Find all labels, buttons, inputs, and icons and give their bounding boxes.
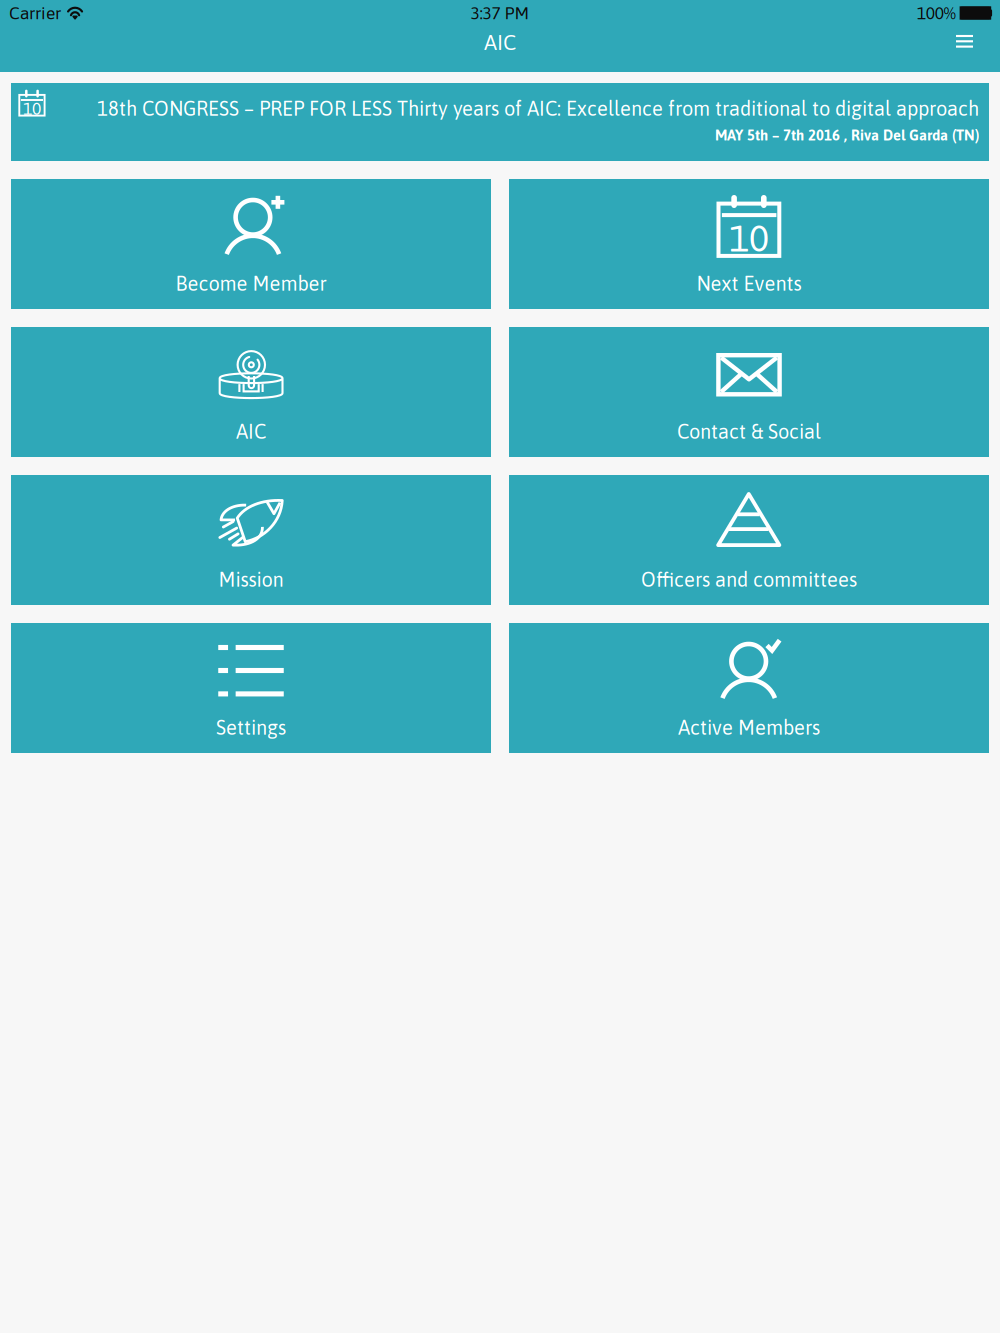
button[interactable]: Become Member [11, 179, 491, 309]
staticText: Next Events [696, 272, 801, 295]
button[interactable]: Active Members [509, 623, 989, 753]
staticText: Officers and committees [641, 568, 857, 591]
staticText: Settings [216, 716, 286, 739]
staticText: 10 [23, 99, 41, 119]
button[interactable]: Contact & Social [509, 327, 989, 457]
button[interactable]: 10 [11, 83, 989, 161]
staticText: Become Member [175, 272, 326, 295]
staticText: Carrier [9, 3, 61, 23]
button[interactable]: Mission [11, 475, 491, 605]
staticText: AIC [484, 30, 516, 54]
staticText: AIC [236, 420, 266, 443]
button[interactable]: Officers and committees [509, 475, 989, 605]
staticText: Active Members [678, 716, 820, 739]
staticText: 18th CONGRESS – PREP FOR LESS Thirty yea… [97, 97, 979, 120]
staticText: Mission [218, 568, 283, 591]
button[interactable]: Settings [11, 623, 491, 753]
staticText: 10 [729, 217, 769, 259]
staticText: 100% [917, 3, 956, 23]
staticText: Contact & Social [677, 420, 821, 443]
button[interactable]: 10 [509, 179, 989, 309]
staticText: MAY 5th – 7th 2016 , Riva Del Garda (TN) [715, 127, 979, 144]
button[interactable]: Menu [946, 26, 983, 59]
staticText: 3:37 PM [470, 3, 529, 23]
button[interactable]: AIC [11, 327, 491, 457]
